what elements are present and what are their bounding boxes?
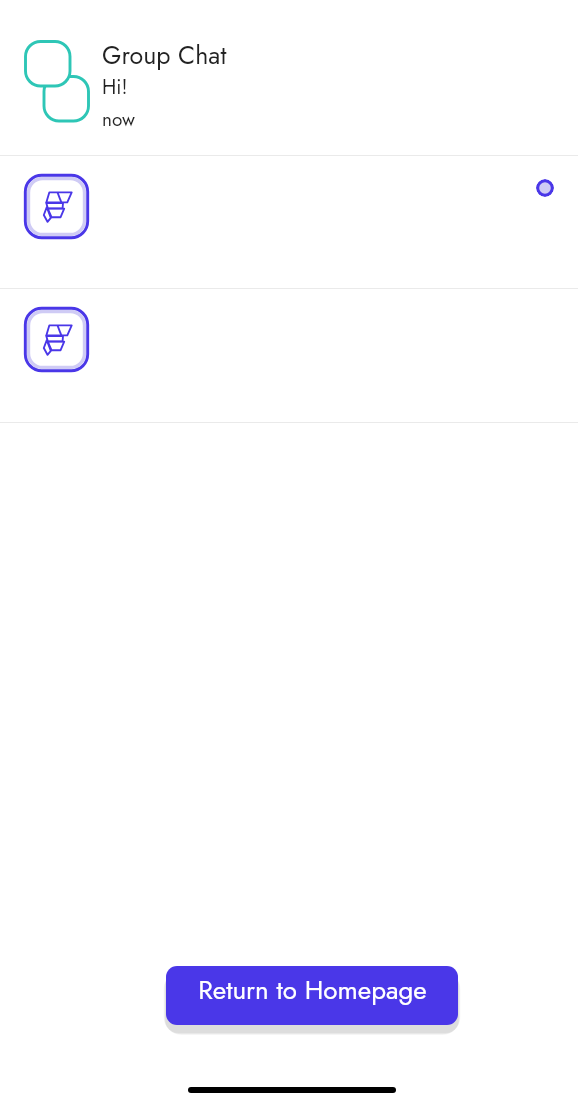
staticText: Group Chat	[102, 37, 227, 73]
button[interactable]: App	[0, 156, 578, 288]
button[interactable]: Group Chat	[0, 0, 578, 155]
button[interactable]: Unread	[536, 179, 554, 197]
staticText: Hi!	[102, 73, 128, 102]
button[interactable]: App	[24, 307, 89, 372]
button[interactable]: App	[24, 174, 89, 239]
staticText: now	[102, 106, 135, 133]
button[interactable]: Return to Homepage	[166, 966, 458, 1025]
staticText: Return to Homepage	[198, 971, 427, 1009]
button[interactable]: App	[0, 289, 578, 422]
